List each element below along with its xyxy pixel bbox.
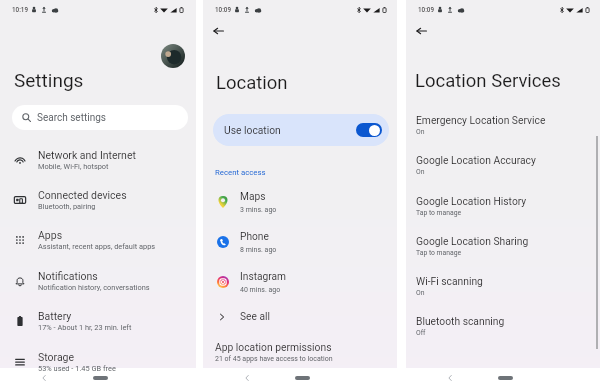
staticText: Battery	[38, 310, 72, 322]
button[interactable]: Connected devices	[0, 180, 196, 220]
button[interactable]: Maps	[203, 182, 397, 222]
staticText: Mobile, Wi-Fi, hotspot	[38, 162, 109, 171]
staticText: See all	[240, 311, 270, 323]
staticText: Connected devices	[38, 189, 127, 201]
staticText: Settings	[14, 69, 84, 91]
staticText: 17% - About 1 hr, 23 min. left	[38, 323, 132, 332]
button[interactable]: Phone	[203, 222, 397, 262]
button[interactable]: Back	[207, 21, 227, 41]
staticText: Use location	[224, 124, 281, 136]
staticText: 53% used - 1.45 GB free	[38, 364, 116, 373]
staticText: On	[416, 289, 425, 297]
staticText: Notifications	[38, 270, 98, 282]
staticText: 8 mins. ago	[240, 246, 277, 254]
staticText: Location	[216, 72, 288, 94]
button[interactable]: Home	[295, 376, 310, 380]
button[interactable]: Account	[161, 44, 185, 68]
staticText: On	[416, 168, 425, 176]
button[interactable]: Battery	[0, 301, 196, 341]
staticText: 10:09	[215, 6, 231, 13]
button[interactable]: Google Location History	[406, 186, 600, 226]
staticText: Storage	[38, 351, 75, 363]
staticText: Tap to manage	[416, 209, 462, 217]
button[interactable]: Use location	[213, 114, 389, 146]
button[interactable]: App location permissions	[203, 341, 397, 363]
staticText: App location permissions	[215, 341, 332, 353]
button[interactable]: Apps	[0, 220, 196, 260]
staticText: Network and Internet	[38, 149, 136, 161]
staticText: Recent access	[215, 168, 266, 177]
staticText: Location Services	[415, 70, 561, 92]
staticText: 3 mins. ago	[240, 206, 277, 214]
button[interactable]: Network and Internet	[0, 140, 196, 180]
staticText: Phone	[240, 231, 269, 243]
button[interactable]: Home	[498, 376, 513, 380]
staticText: On	[416, 128, 425, 136]
staticText: Off	[416, 329, 426, 337]
button[interactable]: Back	[443, 371, 457, 385]
button[interactable]: Google Location Accuracy	[406, 145, 600, 185]
staticText: Wi-Fi scanning	[416, 275, 483, 287]
staticText: Tap to manage	[416, 249, 462, 257]
staticText: Assistant, recent apps, default apps	[38, 242, 156, 251]
button[interactable]: Bluetooth scanning	[406, 306, 600, 346]
button[interactable]: See all	[203, 304, 397, 330]
button[interactable]: Search settings	[12, 105, 188, 130]
staticText: Notification history, conversations	[38, 283, 150, 292]
button[interactable]: Wi-Fi scanning	[406, 266, 600, 306]
staticText: Search settings	[37, 112, 106, 124]
button[interactable]: Google Location Sharing	[406, 226, 600, 266]
button[interactable]: Instagram	[203, 262, 397, 302]
staticText: Google Location History	[416, 195, 527, 207]
button[interactable]: Notifications	[0, 261, 196, 301]
staticText: Apps	[38, 229, 63, 241]
staticText: Emergency Location Service	[416, 114, 546, 126]
staticText: Maps	[240, 191, 266, 203]
staticText: Google Location Accuracy	[416, 154, 536, 166]
button[interactable]: Storage	[0, 342, 196, 382]
button[interactable]: Back	[37, 371, 51, 385]
staticText: 10:09	[418, 6, 434, 13]
staticText: 40 mins. ago	[240, 286, 281, 294]
button[interactable]: Home	[93, 376, 108, 380]
staticText: 21 of 45 apps have access to location	[215, 355, 333, 363]
button[interactable]: Emergency Location Service	[406, 105, 600, 145]
button[interactable]: Back	[410, 21, 430, 41]
button[interactable]: Back	[240, 371, 254, 385]
staticText: Google Location Sharing	[416, 235, 529, 247]
staticText: Instagram	[240, 271, 286, 283]
staticText: Bluetooth, pairing	[38, 202, 96, 211]
staticText: Bluetooth scanning	[416, 315, 505, 327]
staticText: 10:19	[12, 6, 28, 13]
